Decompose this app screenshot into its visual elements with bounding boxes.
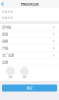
staticText: 智能家居设备	[20, 1, 38, 6]
button[interactable]: 设备	[0, 59, 59, 66]
button[interactable]: Back	[0, 0, 5, 7]
button[interactable]: 升级	[0, 45, 59, 52]
staticText: 出厂设置	[2, 53, 14, 58]
button[interactable]: 定时器	[0, 24, 59, 31]
button[interactable]: Light bulb	[3, 66, 17, 79]
staticText: 设备	[2, 60, 8, 65]
staticText: 定时器	[2, 25, 11, 30]
button[interactable]: 情景	[0, 31, 59, 38]
button[interactable]: 出厂设置	[0, 52, 59, 59]
staticText: 情景	[2, 32, 8, 37]
button[interactable]: 确定	[2, 84, 57, 91]
button[interactable]: Light bulb	[17, 66, 31, 79]
staticText: 设备状态	[1, 16, 13, 19]
button[interactable]: 网络	[0, 38, 59, 45]
staticText: 网络	[2, 39, 8, 44]
staticText: 确定	[26, 86, 32, 90]
staticText: 升级	[2, 46, 8, 51]
staticText: 设备名称	[1, 9, 13, 13]
